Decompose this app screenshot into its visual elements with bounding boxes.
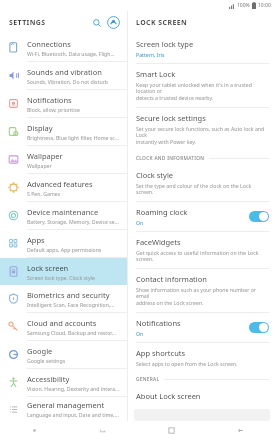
button[interactable]: Search xyxy=(89,15,105,31)
staticText: Brightness, Blue light filter, Home sc..… xyxy=(27,134,120,141)
button[interactable]: Lock screen xyxy=(0,258,127,285)
staticText: Samsung Cloud, Backup and restor... xyxy=(27,329,116,336)
button[interactable]: Back xyxy=(206,421,275,440)
staticText: Set your secure lock functions, such as … xyxy=(136,125,269,146)
staticText: Advanced features xyxy=(27,179,93,189)
staticText: General management xyxy=(27,400,105,410)
staticText: Battery, Storage, Memory, Device se... xyxy=(27,218,119,225)
staticText: Screen lock type, Clock style xyxy=(27,274,95,281)
staticText: Lock screen xyxy=(27,263,69,273)
staticText: Wi-Fi, Bluetooth, Data usage, Fligh... xyxy=(27,50,115,57)
button[interactable]: FaceWidgets xyxy=(128,232,275,268)
staticText: Display xyxy=(27,123,53,133)
button[interactable]: Hide keyboard xyxy=(68,421,137,440)
staticText: Contact information xyxy=(136,274,207,284)
button[interactable]: Cloud and accounts xyxy=(0,313,127,340)
staticText: Intelligent Scan, Face Recognition,... xyxy=(27,301,115,308)
staticText: Biometrics and security xyxy=(27,290,110,300)
staticText: Clock style xyxy=(136,170,174,180)
staticText: CLOCK AND INFORMATION xyxy=(136,155,205,162)
staticText: Secure lock settings xyxy=(136,113,206,123)
button[interactable]: Device maintenance xyxy=(0,202,127,229)
staticText: Vision, Hearing, Dexterity and intera... xyxy=(27,385,120,392)
button[interactable]: Advanced features xyxy=(0,174,127,201)
staticText: 10:00 xyxy=(258,2,271,9)
staticText: Notifications xyxy=(136,318,181,328)
staticText: Sounds and vibration xyxy=(27,67,102,77)
button[interactable]: Toggle Notifications xyxy=(249,322,269,333)
staticText: Select apps to open from the Lock screen… xyxy=(136,360,238,367)
staticText: Wallpaper xyxy=(27,151,63,161)
button[interactable]: About Lock screen xyxy=(128,386,275,406)
button[interactable]: Smart Lock xyxy=(128,64,275,107)
button[interactable]: Apps xyxy=(0,230,127,257)
staticText: App shortcuts xyxy=(136,348,186,358)
staticText: Screen lock type xyxy=(136,39,194,49)
button[interactable]: Notifications xyxy=(128,313,275,342)
button[interactable]: Secure lock settings xyxy=(128,108,275,151)
staticText: Cloud and accounts xyxy=(27,318,97,328)
button[interactable]: Biometrics and security xyxy=(0,285,127,312)
staticText: Sounds, Vibration, Do not disturb xyxy=(27,78,108,85)
button[interactable]: Connections xyxy=(0,34,127,61)
button[interactable]: General management xyxy=(0,397,127,421)
staticText: GENERAL xyxy=(136,376,160,383)
button[interactable]: Account xyxy=(105,14,122,31)
staticText: Keep your tablet unlocked when it's in a… xyxy=(136,81,269,102)
button[interactable]: Google xyxy=(0,341,127,368)
staticText: Roaming clock xyxy=(136,207,188,217)
staticText: LOCK SCREEN xyxy=(136,18,188,28)
button[interactable]: Toggle Roaming clock xyxy=(249,211,269,222)
button[interactable]: Accessibility xyxy=(0,369,127,396)
staticText: Google settings xyxy=(27,357,66,364)
button[interactable]: Display xyxy=(0,118,127,145)
staticText: Show information such as your phone numb… xyxy=(136,286,269,307)
staticText: SETTINGS xyxy=(9,18,46,28)
staticText: Notifications xyxy=(27,95,72,105)
button[interactable]: Screen lock type xyxy=(128,34,275,63)
button[interactable]: Contact information xyxy=(128,269,275,312)
staticText: Default apps, App permissions xyxy=(27,246,102,253)
staticText: Block, allow, prioritise xyxy=(27,106,80,113)
staticText: About Lock screen xyxy=(136,391,201,401)
button[interactable]: App shortcuts xyxy=(128,343,275,372)
staticText: 100% xyxy=(237,2,250,9)
staticText: Language and input, Date and time,... xyxy=(27,411,119,418)
button[interactable]: Notifications xyxy=(0,90,127,117)
staticText: Set the type and colour of the clock on … xyxy=(136,182,269,196)
staticText: Apps xyxy=(27,235,45,245)
staticText: Accessibility xyxy=(27,374,70,384)
button[interactable]: Clock style xyxy=(128,165,275,201)
staticText: Pattern, Iris xyxy=(136,51,165,58)
button[interactable]: Sounds and vibration xyxy=(0,62,127,89)
staticText: Connections xyxy=(27,39,71,49)
staticText: FaceWidgets xyxy=(136,237,181,247)
button[interactable]: Wallpaper xyxy=(0,146,127,173)
button[interactable]: Roaming clock xyxy=(128,202,275,231)
staticText: Get quick access to useful information o… xyxy=(136,249,269,263)
staticText: Device maintenance xyxy=(27,207,99,217)
staticText: On xyxy=(136,219,144,226)
staticText: Google xyxy=(27,346,53,356)
button[interactable]: Recents xyxy=(137,421,206,440)
staticText: Smart Lock xyxy=(136,69,176,79)
staticText: Wallpaper xyxy=(27,162,52,169)
button[interactable]: Menu xyxy=(0,421,68,440)
staticText: On xyxy=(136,330,144,337)
staticText: S Pen, Games xyxy=(27,190,61,197)
